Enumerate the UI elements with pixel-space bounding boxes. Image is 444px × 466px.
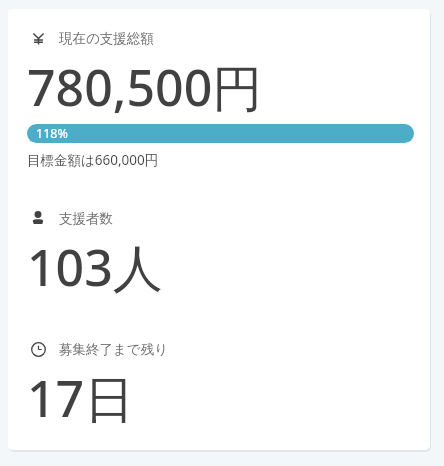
staticText: 780,500円 (27, 53, 263, 121)
staticText: 現在の支援総額 (59, 30, 154, 47)
other: Number of supporters (27, 207, 49, 229)
button[interactable]: Total amount raised (8, 9, 430, 450)
staticText: 17日 (27, 364, 135, 432)
other: Total amount raised (27, 27, 49, 49)
staticText: 支援者数 (59, 210, 113, 227)
staticText: 118% (36, 125, 68, 142)
staticText: 募集終了まで残り (59, 341, 168, 358)
staticText: 103人 (27, 233, 163, 301)
staticText: 目標金額は660,000円 (27, 151, 159, 169)
other: Days remaining (27, 338, 49, 360)
